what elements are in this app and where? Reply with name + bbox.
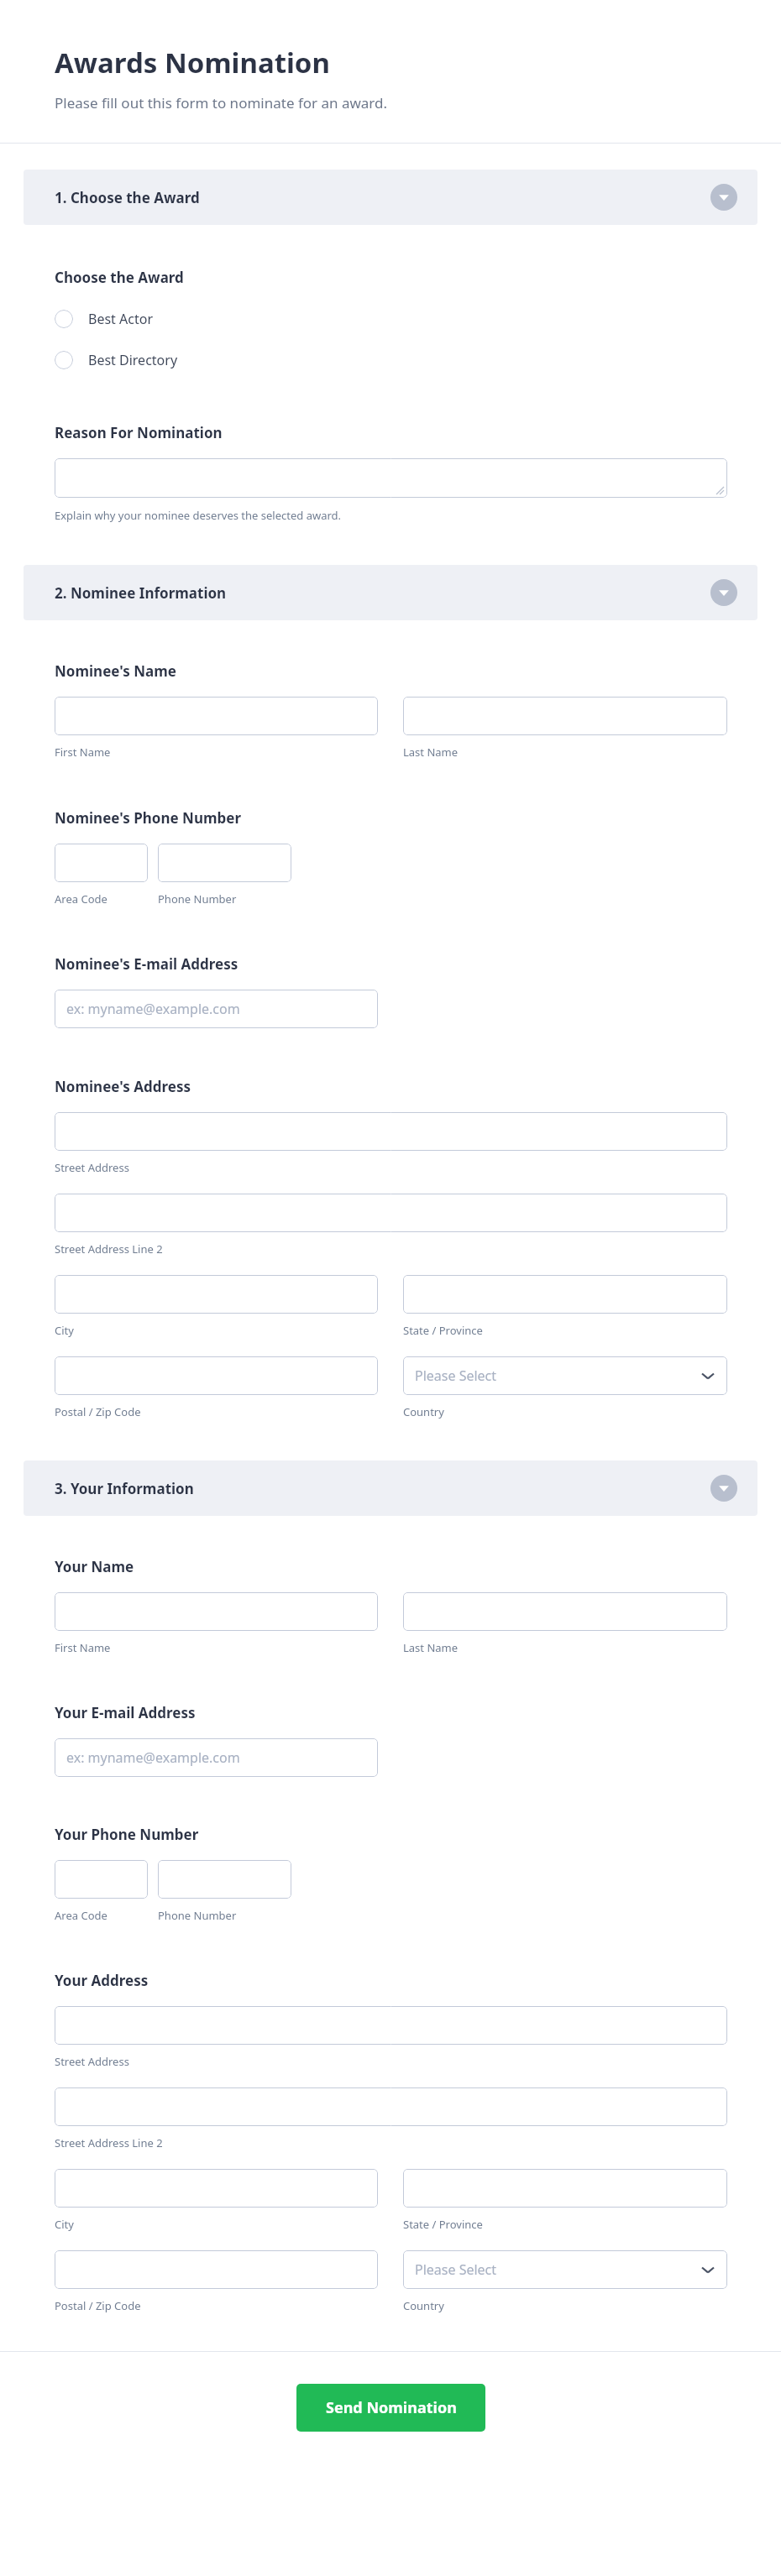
staticText: Postal / Zip Code	[55, 1404, 141, 1419]
button[interactable]	[55, 2169, 378, 2208]
button[interactable]	[158, 844, 291, 882]
staticText: Best Actor	[88, 310, 153, 328]
staticText: Country	[403, 1404, 444, 1419]
button[interactable]: Best Actor	[55, 305, 153, 333]
button[interactable]	[403, 1275, 727, 1314]
staticText: Nominee's E-mail Address	[55, 954, 238, 974]
button[interactable]: 3. Your Information	[24, 1460, 757, 1516]
staticText: Last Name	[403, 745, 459, 760]
staticText: 1. Choose the Award	[55, 188, 200, 207]
staticText: Please fill out this form to nominate fo…	[55, 93, 388, 112]
staticText: Your Name	[55, 1557, 134, 1576]
staticText: Nominee's Address	[55, 1077, 191, 1096]
staticText: Phone Number	[158, 891, 237, 907]
staticText: Please Select	[415, 2260, 497, 2279]
staticText: Awards Nomination	[55, 44, 330, 81]
staticText: Area Code	[55, 1908, 107, 1923]
staticText: ex: myname@example.com	[66, 1748, 240, 1767]
button[interactable]	[403, 2169, 727, 2208]
button[interactable]: Collapse section	[710, 579, 737, 606]
button[interactable]: Collapse section	[710, 1475, 737, 1502]
staticText: Street Address	[55, 2054, 129, 2069]
staticText: Nominee's Name	[55, 661, 176, 681]
staticText: ex: myname@example.com	[66, 1000, 240, 1018]
staticText: First Name	[55, 1640, 111, 1655]
staticText: State / Province	[403, 1323, 483, 1338]
staticText: Choose the Award	[55, 268, 184, 287]
button[interactable]: Collapse section	[710, 184, 737, 211]
button[interactable]	[55, 1592, 378, 1631]
staticText: State / Province	[403, 2217, 483, 2232]
staticText: Area Code	[55, 891, 107, 907]
staticText: Please Select	[415, 1366, 497, 1385]
staticText: Street Address Line 2	[55, 2135, 163, 2150]
staticText: Last Name	[403, 1640, 459, 1655]
button[interactable]: ex: myname@example.com	[55, 990, 378, 1028]
button[interactable]	[55, 844, 148, 882]
button[interactable]	[55, 458, 727, 498]
button[interactable]	[158, 1860, 291, 1899]
staticText: Street Address Line 2	[55, 1241, 163, 1257]
button[interactable]	[55, 1860, 148, 1899]
staticText: Your E-mail Address	[55, 1703, 196, 1722]
staticText: 2. Nominee Information	[55, 583, 227, 603]
staticText: 3. Your Information	[55, 1479, 194, 1498]
staticText: Your Address	[55, 1971, 149, 1990]
button[interactable]: Best Directory	[55, 346, 178, 374]
staticText: Best Directory	[88, 351, 178, 369]
staticText: Your Phone Number	[55, 1825, 199, 1844]
button[interactable]: Send Nomination	[296, 2384, 485, 2432]
button[interactable]	[55, 2087, 727, 2126]
button[interactable]: ex: myname@example.com	[55, 1738, 378, 1777]
button[interactable]	[403, 1592, 727, 1631]
staticText: Street Address	[55, 1160, 129, 1175]
staticText: Phone Number	[158, 1908, 237, 1923]
button[interactable]	[55, 1194, 727, 1232]
staticText: City	[55, 1323, 74, 1338]
staticText: Nominee's Phone Number	[55, 808, 242, 828]
button[interactable]: Please Select	[403, 1356, 727, 1395]
button[interactable]	[55, 1275, 378, 1314]
button[interactable]: 2. Nominee Information	[24, 565, 757, 620]
staticText: Postal / Zip Code	[55, 2298, 141, 2313]
staticText: Reason For Nomination	[55, 423, 223, 442]
button[interactable]: 1. Choose the Award	[24, 170, 757, 225]
button[interactable]	[55, 697, 378, 735]
staticText: First Name	[55, 745, 111, 760]
staticText: Send Nomination	[326, 2397, 457, 2418]
staticText: Explain why your nominee deserves the se…	[55, 508, 342, 523]
button[interactable]	[55, 2250, 378, 2289]
button[interactable]	[55, 1356, 378, 1395]
button[interactable]: Please Select	[403, 2250, 727, 2289]
button[interactable]	[55, 1112, 727, 1151]
staticText: Country	[403, 2298, 444, 2313]
button[interactable]	[403, 697, 727, 735]
button[interactable]	[55, 2006, 727, 2045]
staticText: City	[55, 2217, 74, 2232]
